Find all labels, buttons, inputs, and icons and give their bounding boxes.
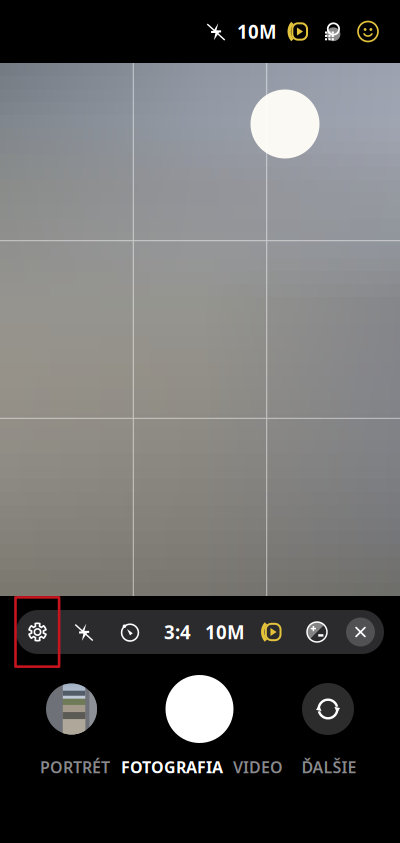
- button[interactable]: 10M: [204, 610, 246, 654]
- button[interactable]: 3:4: [151, 610, 204, 654]
- button[interactable]: Settings: [16, 610, 59, 654]
- staticText: PORTRÉT: [40, 756, 110, 778]
- button[interactable]: Close: [337, 610, 384, 654]
- button[interactable]: Timer: [109, 610, 151, 654]
- button[interactable]: Motion photo: [246, 610, 297, 654]
- staticText: 10M: [237, 19, 277, 44]
- staticText: 3:4: [164, 620, 191, 644]
- button[interactable]: Flash off: [201, 14, 231, 48]
- button[interactable]: Beauty: [355, 14, 381, 48]
- button[interactable]: VIDEO: [232, 752, 284, 782]
- button[interactable]: 10M: [239, 14, 275, 48]
- button[interactable]: ĎALŠIE: [296, 752, 362, 782]
- button[interactable]: AI scene detection: [320, 14, 346, 48]
- button[interactable]: Take photo: [165, 675, 233, 743]
- staticText: VIDEO: [233, 756, 283, 778]
- button[interactable]: FOTOGRAFIA: [124, 752, 220, 782]
- staticText: FOTOGRAFIA: [121, 756, 223, 778]
- button[interactable]: Gallery: [46, 683, 97, 734]
- button[interactable]: Switch camera: [302, 683, 354, 735]
- button[interactable]: Motion photo: [285, 14, 311, 48]
- button[interactable]: Exposure: [297, 610, 337, 654]
- staticText: 10M: [205, 620, 245, 644]
- staticText: ĎALŠIE: [301, 756, 356, 778]
- button[interactable]: PORTRÉT: [38, 752, 112, 782]
- button[interactable]: Flash off: [59, 610, 109, 654]
